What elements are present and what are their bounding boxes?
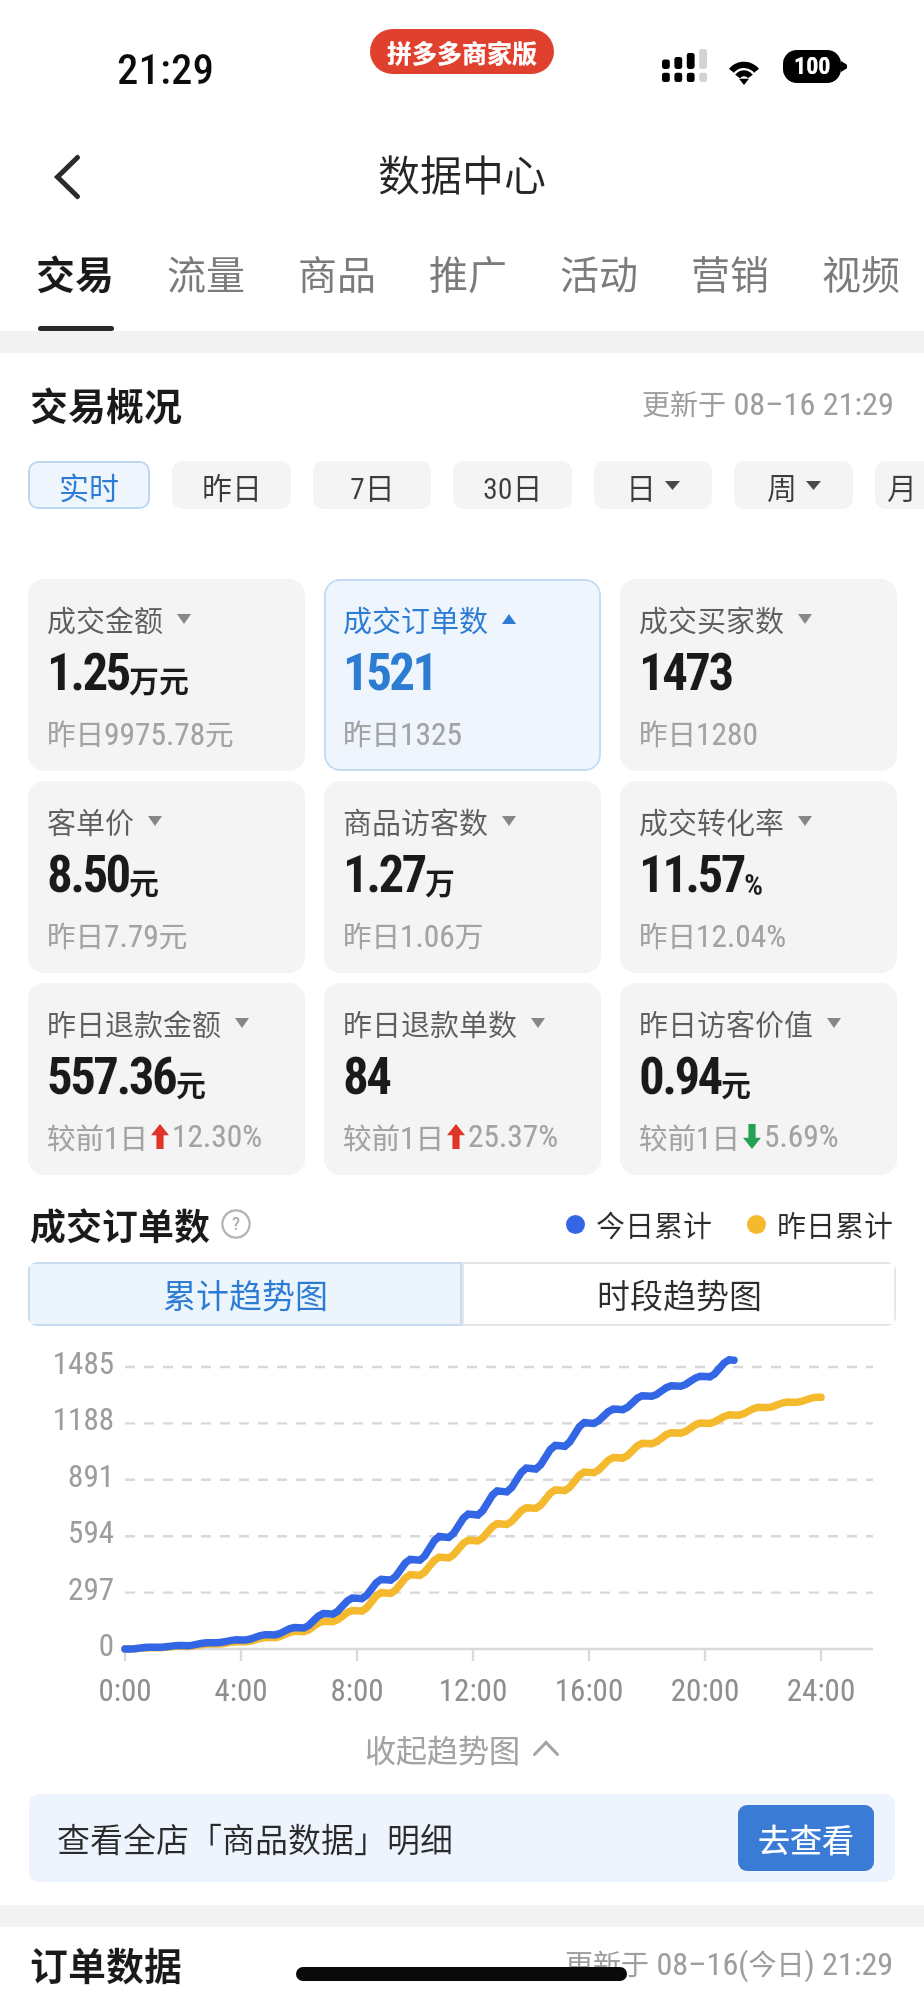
staticText: 昨日1.06万 [343, 914, 484, 955]
button[interactable]: 商品 [298, 230, 377, 326]
staticText: 昨日1325 [343, 712, 462, 753]
button[interactable]: 营销 [691, 230, 770, 326]
button[interactable]: 去查看 [738, 1805, 874, 1871]
staticText: 较前1日 [47, 1116, 148, 1157]
staticText: 8:00 [297, 1672, 417, 1708]
staticText: 557.36 [47, 1047, 176, 1107]
staticText: 891 [0, 1458, 114, 1494]
staticText: 万 [425, 859, 455, 902]
staticText: 30日 [483, 464, 543, 507]
button[interactable]: 成交订单数 [324, 579, 601, 771]
button[interactable]: 视频 [822, 230, 901, 326]
staticText: 元 [129, 859, 159, 902]
button[interactable]: 商品访客数 [324, 781, 601, 973]
button[interactable]: 实时 [28, 461, 150, 509]
button[interactable]: 时段趋势图 [462, 1262, 896, 1326]
staticText: 297 [0, 1571, 114, 1607]
staticText: 更新于 08–16(今日) 21:29 [565, 1943, 894, 1984]
button[interactable]: 月 [875, 461, 924, 509]
staticText: 更新于 08–16 21:29 [642, 383, 894, 424]
staticText: 1188 [0, 1401, 114, 1437]
button[interactable]: 客单价 [28, 781, 305, 973]
staticText: ? [232, 1212, 241, 1234]
staticText: 594 [0, 1514, 114, 1550]
staticText: 元 [176, 1061, 206, 1104]
staticText: 实时 [59, 464, 119, 507]
button[interactable]: 30日 [453, 461, 572, 509]
button[interactable]: 成交转化率 [620, 781, 897, 973]
button[interactable]: 流量 [167, 230, 246, 326]
staticText: 较前1日 [343, 1116, 444, 1157]
button[interactable]: 活动 [560, 230, 639, 326]
staticText: 成交订单数 [343, 598, 489, 640]
staticText: 1473 [639, 643, 732, 703]
staticText: 昨日9975.78元 [47, 712, 234, 753]
staticText: 收起趋势图 [365, 1726, 520, 1771]
staticText: 交易 [36, 244, 115, 300]
staticText: 商品 [298, 244, 377, 300]
button[interactable]: 昨日退款单数 [324, 983, 601, 1175]
staticText: 查看全店「商品数据」明细 [57, 1814, 453, 1862]
staticText: 万元 [129, 657, 189, 700]
staticText: 活动 [560, 244, 639, 300]
staticText: 0:00 [65, 1672, 185, 1708]
staticText: 成交转化率 [639, 800, 785, 842]
staticText: 商品访客数 [343, 800, 489, 842]
staticText: 0.94 [639, 1047, 721, 1107]
staticText: 周 [767, 464, 797, 507]
staticText: 客单价 [47, 800, 135, 842]
button[interactable]: 昨日 [172, 461, 291, 509]
staticText: 交易概况 [30, 376, 183, 431]
staticText: 25.37% [468, 1118, 558, 1155]
staticText: 1485 [0, 1345, 114, 1381]
button[interactable]: 成交金额 [28, 579, 305, 771]
staticText: 20:00 [645, 1672, 765, 1708]
button[interactable]: 昨日退款金额 [28, 983, 305, 1175]
staticText: 8.50 [47, 845, 129, 905]
staticText: 21:29 [117, 44, 214, 94]
staticText: 昨日7.79元 [47, 914, 188, 955]
staticText: 12.30% [172, 1118, 262, 1155]
staticText: 订单数据 [30, 1936, 183, 1991]
staticText: 昨日12.04% [639, 914, 786, 955]
button[interactable]: 交易 [36, 230, 115, 331]
staticText: 7日 [350, 464, 395, 507]
staticText: 成交订单数 [30, 1198, 211, 1250]
staticText: 昨日 [202, 464, 262, 507]
staticText: 今日累计 [596, 1203, 713, 1245]
staticText: 16:00 [529, 1672, 649, 1708]
staticText: 5.69% [764, 1118, 839, 1155]
button[interactable]: 说明 [221, 1209, 251, 1239]
staticText: 较前1日 [639, 1116, 740, 1157]
staticText: % [744, 867, 764, 902]
button[interactable]: 7日 [313, 461, 431, 509]
button[interactable]: 昨日访客价值 [620, 983, 897, 1175]
staticText: 0 [0, 1627, 114, 1663]
staticText: 月 [887, 464, 917, 507]
staticText: 昨日退款金额 [47, 1002, 222, 1044]
button[interactable]: 日 [594, 461, 712, 509]
staticText: 昨日累计 [777, 1203, 894, 1245]
staticText: 昨日访客价值 [639, 1002, 814, 1044]
button[interactable]: 成交买家数 [620, 579, 897, 771]
staticText: 成交金额 [47, 598, 164, 640]
staticText: 时段趋势图 [597, 1270, 762, 1318]
button[interactable]: 累计趋势图 [28, 1262, 462, 1326]
button[interactable]: 推广 [429, 230, 508, 326]
staticText: 昨日1280 [639, 712, 758, 753]
button[interactable]: Back [22, 132, 112, 222]
button[interactable]: 周 [734, 461, 853, 509]
staticText: 流量 [167, 244, 246, 300]
staticText: 昨日退款单数 [343, 1002, 518, 1044]
staticText: 成交买家数 [639, 598, 785, 640]
staticText: 去查看 [758, 1815, 855, 1861]
button[interactable]: 收起趋势图 [0, 1722, 924, 1774]
staticText: 视频 [822, 244, 901, 300]
staticText: 1.25 [47, 643, 129, 703]
staticText: 4:00 [181, 1672, 301, 1708]
staticText: 1.27 [343, 845, 425, 905]
staticText: 推广 [429, 244, 508, 300]
staticText: 累计趋势图 [163, 1270, 328, 1318]
staticText: 84 [343, 1047, 390, 1107]
staticText: 100 [794, 52, 831, 80]
